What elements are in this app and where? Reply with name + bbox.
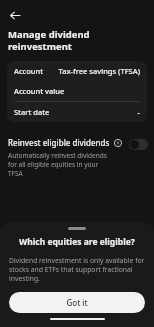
button[interactable]: Reinvest eligible dividends toggle bbox=[129, 139, 148, 150]
button[interactable]: Account bbox=[7, 61, 147, 81]
staticText: Got it bbox=[66, 297, 88, 308]
staticText: Tax-free savings (TFSA) bbox=[58, 66, 140, 76]
staticText: Reinvest eligible dividends bbox=[8, 137, 110, 148]
staticText: Which equities are eligible? bbox=[19, 236, 135, 248]
staticText: Automatically reinvest dividends for all… bbox=[8, 151, 111, 178]
button[interactable]: Account value bbox=[7, 81, 147, 101]
button[interactable]: Reinvest eligible dividends bbox=[0, 135, 154, 180]
button[interactable]: Back bbox=[5, 5, 25, 25]
button[interactable]: Start date bbox=[7, 102, 147, 122]
button[interactable]: Got it bbox=[9, 292, 145, 313]
button[interactable]: More information bbox=[113, 138, 122, 147]
staticText: Account bbox=[14, 66, 44, 76]
staticText: Manage dividend reinvestment bbox=[8, 28, 146, 53]
staticText: Start date bbox=[14, 107, 50, 117]
staticText: - bbox=[137, 107, 140, 117]
staticText: Dividend reinvestment is only available … bbox=[9, 256, 145, 283]
staticText: Account value bbox=[14, 86, 65, 96]
